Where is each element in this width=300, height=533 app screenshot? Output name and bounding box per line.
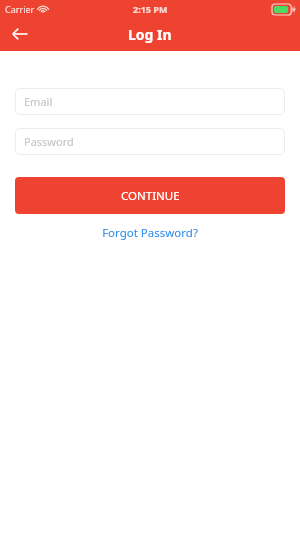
- staticText: Carrier: [5, 3, 35, 15]
- staticText: Email: [24, 94, 53, 109]
- staticText: CONTINUE: [121, 188, 180, 204]
- staticText: 2:15 PM: [133, 3, 168, 15]
- button[interactable]: Email: [15, 88, 285, 115]
- staticText: Log In: [128, 25, 172, 44]
- button[interactable]: CONTINUE: [15, 177, 285, 214]
- button[interactable]: Forgot Password?: [15, 222, 285, 244]
- button[interactable]: Password: [15, 128, 285, 155]
- button[interactable]: Back: [0, 18, 40, 50]
- staticText: Forgot Password?: [102, 225, 198, 241]
- staticText: Password: [24, 134, 74, 149]
